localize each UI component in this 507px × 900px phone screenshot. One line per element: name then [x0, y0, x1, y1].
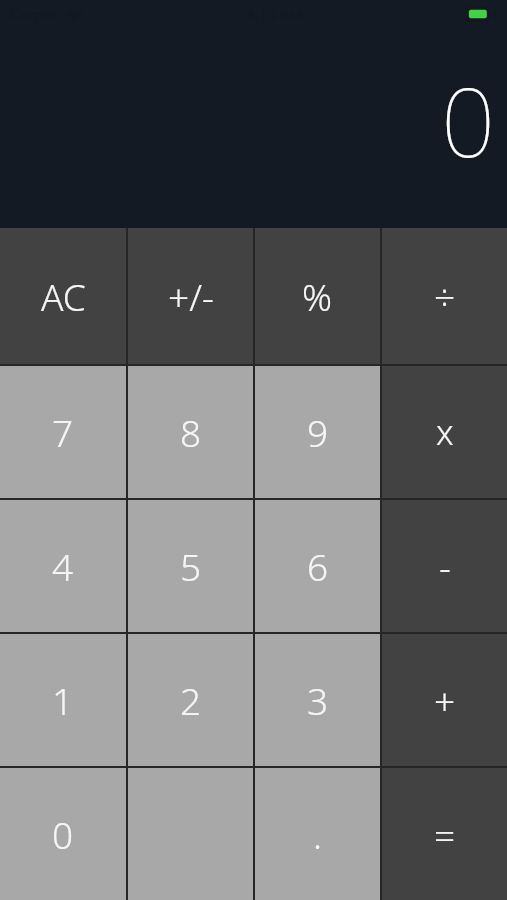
staticText: 0 [52, 809, 74, 859]
button[interactable]: + [382, 634, 507, 766]
staticText: = [434, 809, 456, 859]
staticText: + [434, 675, 456, 725]
button[interactable]: ÷ [382, 228, 507, 364]
button[interactable]: 7 [0, 366, 126, 498]
staticText: 7 [52, 407, 74, 457]
button[interactable]: 4 [0, 500, 126, 632]
staticText: 9 [307, 407, 329, 457]
button[interactable]: % [255, 228, 380, 364]
staticText: 8 [180, 407, 202, 457]
staticText: 5 [180, 541, 202, 591]
button[interactable]: x [382, 366, 507, 498]
staticText: 2 [180, 675, 202, 725]
staticText: . [313, 809, 323, 859]
button[interactable]: 2 [128, 634, 253, 766]
staticText: +/- [168, 271, 214, 321]
staticText: ÷ [434, 271, 456, 321]
button[interactable]: - [382, 500, 507, 632]
staticText: x [436, 408, 454, 456]
button[interactable]: 9 [255, 366, 380, 498]
staticText: - [439, 541, 451, 591]
other: Battery charging [466, 7, 498, 21]
button[interactable]: 8 [128, 366, 253, 498]
button[interactable]: +/- [128, 228, 253, 364]
button[interactable]: = [382, 768, 507, 900]
staticText: 1 [52, 675, 74, 725]
button[interactable]: 3 [255, 634, 380, 766]
staticText: 0 [441, 55, 496, 184]
button[interactable]: 5 [128, 500, 253, 632]
staticText: 6 [307, 541, 329, 591]
button[interactable]: 6 [255, 500, 380, 632]
staticText: % [302, 271, 333, 321]
staticText: AC [41, 271, 86, 321]
button[interactable]: 1 [0, 634, 126, 766]
staticText: 3 [307, 675, 329, 725]
staticText: 4 [52, 541, 74, 591]
button[interactable]: 0 [0, 768, 126, 900]
button[interactable]: AC [0, 228, 126, 364]
